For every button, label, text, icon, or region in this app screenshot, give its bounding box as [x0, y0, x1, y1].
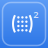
button[interactable]: Dialer [0, 0, 48, 48]
staticText: 2 [33, 8, 38, 21]
